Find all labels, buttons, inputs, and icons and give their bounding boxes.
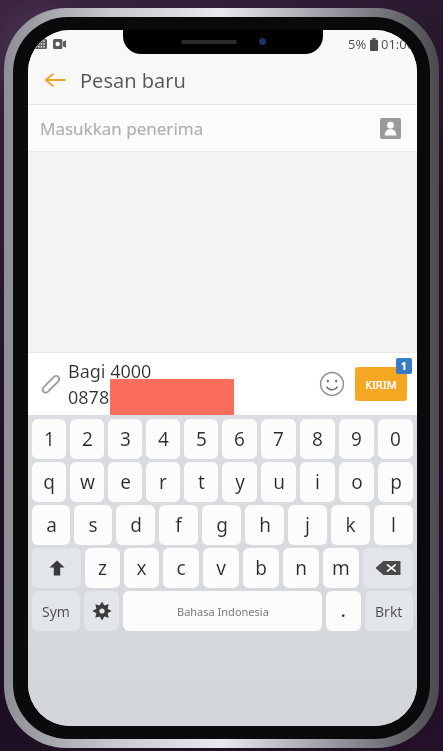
staticText: Brkt — [375, 602, 403, 621]
button[interactable]: 2 — [70, 419, 104, 459]
staticText: f — [175, 512, 182, 538]
staticText: s — [88, 512, 98, 538]
staticText: x — [136, 555, 147, 581]
other: Shift — [47, 558, 67, 578]
button[interactable]: i — [300, 462, 335, 502]
button[interactable]: d — [116, 505, 155, 545]
staticText: d — [130, 512, 142, 538]
button[interactable]: p — [378, 462, 413, 502]
button[interactable]: m — [323, 548, 359, 588]
staticText: Masukkan penerima — [40, 117, 375, 140]
button[interactable]: u — [261, 462, 296, 502]
staticText: a — [46, 512, 57, 538]
staticText: q — [43, 469, 55, 495]
button[interactable]: k — [331, 505, 370, 545]
button[interactable]: t — [184, 462, 218, 502]
button[interactable]: y — [222, 462, 257, 502]
button[interactable]: r — [146, 462, 180, 502]
button[interactable]: j — [288, 505, 327, 545]
staticText: 5 — [196, 426, 207, 452]
button[interactable]: l — [374, 505, 413, 545]
staticText: j — [305, 512, 310, 538]
button[interactable]: Emoji — [315, 367, 349, 401]
button[interactable]: 0 — [378, 419, 413, 459]
button[interactable]: 8 — [300, 419, 335, 459]
staticText: . — [341, 600, 346, 622]
button[interactable]: Brkt — [365, 591, 413, 631]
button[interactable]: Keyboard settings — [84, 591, 119, 631]
staticText: g — [216, 512, 228, 538]
button[interactable]: 6 — [222, 419, 257, 459]
staticText: Pesan baru — [80, 67, 186, 94]
button[interactable]: e — [108, 462, 142, 502]
button[interactable]: Backspace — [363, 548, 413, 588]
button[interactable]: g — [202, 505, 241, 545]
staticText: 6 — [234, 426, 245, 452]
button[interactable]: o — [339, 462, 374, 502]
button[interactable]: z — [85, 548, 120, 588]
button[interactable]: x — [124, 548, 159, 588]
staticText: 1 — [401, 359, 407, 373]
staticText: u — [273, 469, 285, 495]
staticText: 5% — [348, 35, 367, 53]
button[interactable]: b — [243, 548, 279, 588]
button[interactable]: Back — [34, 59, 76, 101]
button[interactable]: Shift — [32, 548, 81, 588]
button[interactable]: Sym — [32, 591, 80, 631]
button[interactable]: 3 — [108, 419, 142, 459]
button[interactable]: Pick contact — [375, 113, 405, 143]
staticText: e — [120, 469, 131, 495]
button[interactable]: 5 — [184, 419, 218, 459]
staticText: Bagi 4000 — [68, 359, 152, 384]
button[interactable]: 9 — [339, 419, 374, 459]
staticText: Bahasa Indonesia — [177, 604, 269, 619]
staticText: KIRIM — [365, 377, 397, 392]
staticText: v — [216, 555, 226, 581]
staticText: i — [315, 469, 320, 495]
other: Keyboard settings — [92, 601, 112, 621]
button[interactable]: f — [159, 505, 198, 545]
staticText: 3 — [120, 426, 131, 452]
other: Backspace — [375, 560, 401, 576]
staticText: n — [295, 555, 307, 581]
staticText: w — [80, 469, 95, 495]
staticText: 8 — [312, 426, 323, 452]
staticText: m — [332, 555, 350, 581]
button[interactable]: c — [163, 548, 199, 588]
staticText: y — [235, 469, 245, 495]
staticText: o — [351, 469, 363, 495]
staticText: Sym — [42, 602, 70, 621]
staticText: r — [159, 469, 167, 495]
staticText: z — [98, 555, 107, 581]
button[interactable]: v — [203, 548, 239, 588]
staticText: b — [255, 555, 267, 581]
button[interactable]: 1 — [32, 419, 66, 459]
button[interactable]: KIRIM — [355, 367, 407, 401]
staticText: 0 — [390, 426, 401, 452]
staticText: 7 — [273, 426, 284, 452]
staticText: 2 — [82, 426, 93, 452]
button[interactable]: h — [245, 505, 284, 545]
staticText: k — [345, 512, 356, 538]
button[interactable]: s — [74, 505, 112, 545]
staticText: 9 — [351, 426, 362, 452]
button[interactable]: 4 — [146, 419, 180, 459]
staticText: p — [390, 469, 402, 495]
staticText: 4 — [158, 426, 169, 452]
button[interactable]: . — [326, 591, 361, 631]
staticText: 1 — [44, 426, 55, 452]
staticText: l — [391, 512, 396, 538]
button[interactable]: q — [32, 462, 66, 502]
staticText: h — [259, 512, 271, 538]
staticText: 01:06 — [381, 35, 415, 53]
staticText: 08787 — [68, 385, 120, 410]
button[interactable]: Attach — [32, 367, 66, 401]
button[interactable]: n — [283, 548, 319, 588]
button[interactable]: a — [32, 505, 70, 545]
button[interactable]: Masukkan penerima — [28, 105, 417, 151]
staticText: t — [198, 469, 205, 495]
button[interactable]: 7 — [261, 419, 296, 459]
button[interactable]: Bahasa Indonesia — [123, 591, 322, 631]
staticText: c — [176, 555, 186, 581]
button[interactable]: w — [70, 462, 104, 502]
